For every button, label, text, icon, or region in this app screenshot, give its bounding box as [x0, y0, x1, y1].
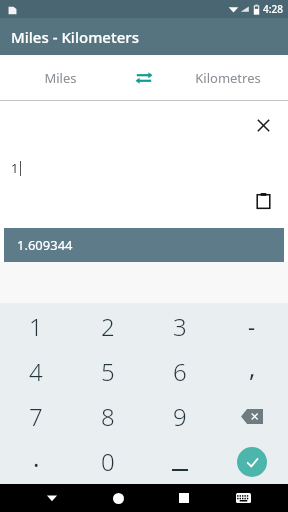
- button[interactable]: 2: [72, 303, 144, 349]
- staticText: Miles: [44, 69, 77, 87]
- staticText: Miles - Kilometers: [11, 27, 139, 47]
- staticText: 1: [29, 310, 43, 343]
- staticText: 2: [101, 310, 115, 343]
- staticText: 6: [173, 355, 187, 388]
- button[interactable]: ,: [216, 349, 288, 394]
- button[interactable]: 1: [0, 303, 72, 349]
- staticText: 3: [173, 310, 187, 343]
- button[interactable]: Paste: [246, 183, 280, 217]
- button[interactable]: 8: [72, 394, 144, 439]
- button[interactable]: 6: [144, 349, 216, 394]
- staticText: 4: [29, 355, 43, 388]
- staticText: 4:28: [263, 2, 283, 16]
- button[interactable]: Miles - Kilometers: [0, 18, 288, 55]
- button[interactable]: [144, 439, 216, 484]
- button[interactable]: Swap units: [120, 55, 168, 100]
- staticText: 7: [29, 400, 43, 433]
- button[interactable]: 7: [0, 394, 72, 439]
- button[interactable]: Done: [216, 439, 288, 484]
- button[interactable]: Keyboard: [217, 484, 270, 512]
- button[interactable]: 9: [144, 394, 216, 439]
- button[interactable]: Clear: [246, 108, 280, 142]
- staticText: -: [248, 311, 256, 341]
- staticText: 9: [173, 400, 187, 433]
- button[interactable]: -: [216, 303, 288, 349]
- staticText: .: [33, 441, 40, 474]
- button[interactable]: .: [0, 439, 72, 484]
- staticText: 1.609344: [17, 236, 73, 254]
- button[interactable]: Back: [18, 484, 85, 512]
- button[interactable]: 5: [72, 349, 144, 394]
- button[interactable]: 4: [0, 349, 72, 394]
- staticText: Kilometres: [195, 69, 261, 87]
- button[interactable]: Kilometres: [168, 55, 288, 100]
- staticText: 0: [101, 445, 115, 478]
- button[interactable]: Miles: [0, 55, 120, 100]
- staticText: 1: [11, 159, 19, 177]
- button[interactable]: Recents: [151, 484, 217, 512]
- button[interactable]: 0: [72, 439, 144, 484]
- staticText: 5: [101, 355, 115, 388]
- button[interactable]: 1.609344: [4, 228, 284, 262]
- button[interactable]: 3: [144, 303, 216, 349]
- staticText: ,: [249, 351, 256, 384]
- staticText: 8: [101, 400, 115, 433]
- button[interactable]: Backspace: [216, 394, 288, 439]
- button[interactable]: Home: [85, 484, 151, 512]
